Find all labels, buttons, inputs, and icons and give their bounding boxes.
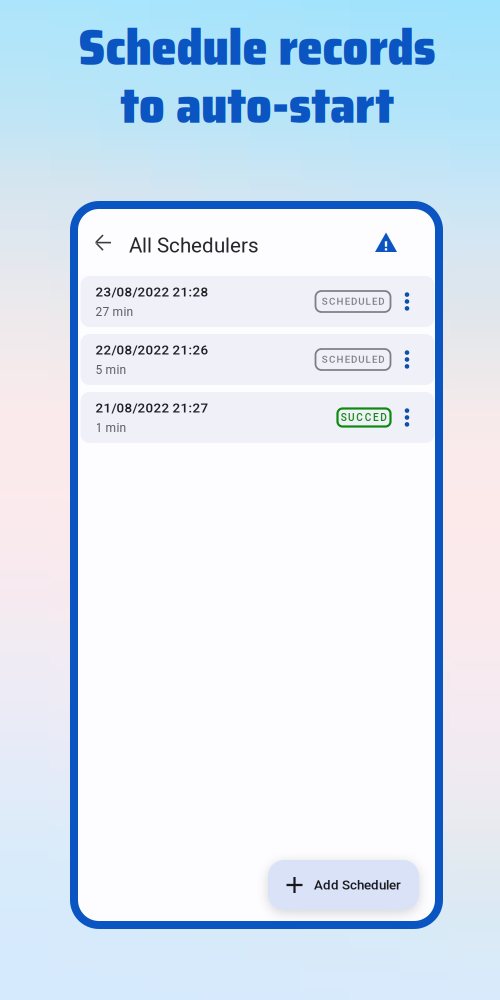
- staticText: SCHEDULED: [322, 354, 384, 365]
- button[interactable]: Add Scheduler: [268, 860, 419, 910]
- button[interactable]: Warning: [367, 219, 405, 265]
- staticText: 1 min: [95, 421, 126, 435]
- staticText: SUCCED: [341, 412, 387, 423]
- button[interactable]: 21/08/2022 21:27: [80, 392, 434, 443]
- button[interactable]: 23/08/2022 21:28: [80, 276, 434, 327]
- staticText: 5 min: [95, 363, 126, 377]
- staticText: Add Scheduler: [314, 877, 401, 893]
- staticText: 21/08/2022 21:27: [95, 400, 208, 416]
- staticText: Schedule records: [78, 7, 435, 87]
- staticText: SCHEDULED: [322, 296, 384, 307]
- staticText: to auto-start: [120, 65, 394, 145]
- button[interactable]: 22/08/2022 21:26: [80, 334, 434, 385]
- staticText: 22/08/2022 21:26: [95, 342, 208, 358]
- button[interactable]: Back: [86, 219, 120, 265]
- staticText: 27 min: [95, 305, 133, 319]
- staticText: All Schedulers: [129, 233, 259, 258]
- staticText: 23/08/2022 21:28: [95, 284, 208, 300]
